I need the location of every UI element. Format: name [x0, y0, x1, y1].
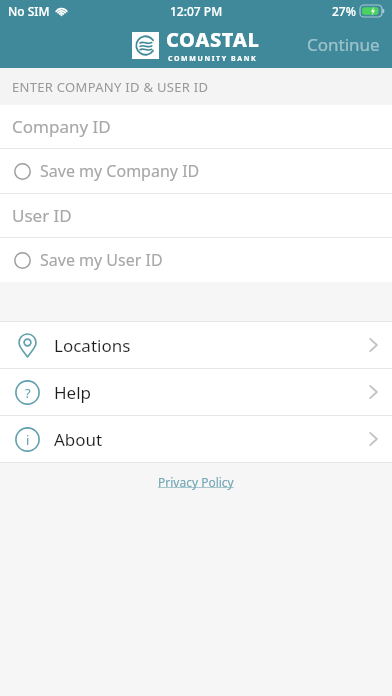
staticText: Help — [54, 381, 92, 404]
button[interactable]: Locations — [0, 322, 392, 368]
staticText: i — [26, 431, 30, 449]
staticText: Company ID — [12, 115, 111, 138]
staticText: COMMUNITY BANK — [168, 54, 258, 64]
staticText: Privacy Policy — [158, 474, 234, 490]
button[interactable]: Privacy Policy — [150, 470, 242, 494]
staticText: ENTER COMPANY ID & USER ID — [12, 78, 209, 96]
staticText: ? — [25, 384, 31, 402]
button[interactable]: User ID — [0, 194, 392, 237]
staticText: Locations — [54, 334, 131, 357]
button[interactable]: ? — [0, 369, 392, 415]
staticText: 27% — [332, 3, 356, 19]
staticText: 12:07 PM — [170, 3, 223, 19]
staticText: Continue — [307, 33, 380, 56]
staticText: About — [54, 428, 103, 451]
button[interactable]: Continue — [295, 23, 392, 66]
staticText: COASTAL — [166, 26, 260, 53]
button[interactable]: Save my User ID — [0, 238, 392, 282]
staticText: User ID — [12, 204, 72, 227]
button[interactable]: i — [0, 416, 392, 462]
button[interactable]: Save my Company ID — [0, 149, 392, 193]
staticText: No SIM — [8, 3, 50, 19]
staticText: Save my User ID — [40, 249, 163, 271]
staticText: Save my Company ID — [40, 160, 200, 182]
button[interactable]: Company ID — [0, 105, 392, 148]
